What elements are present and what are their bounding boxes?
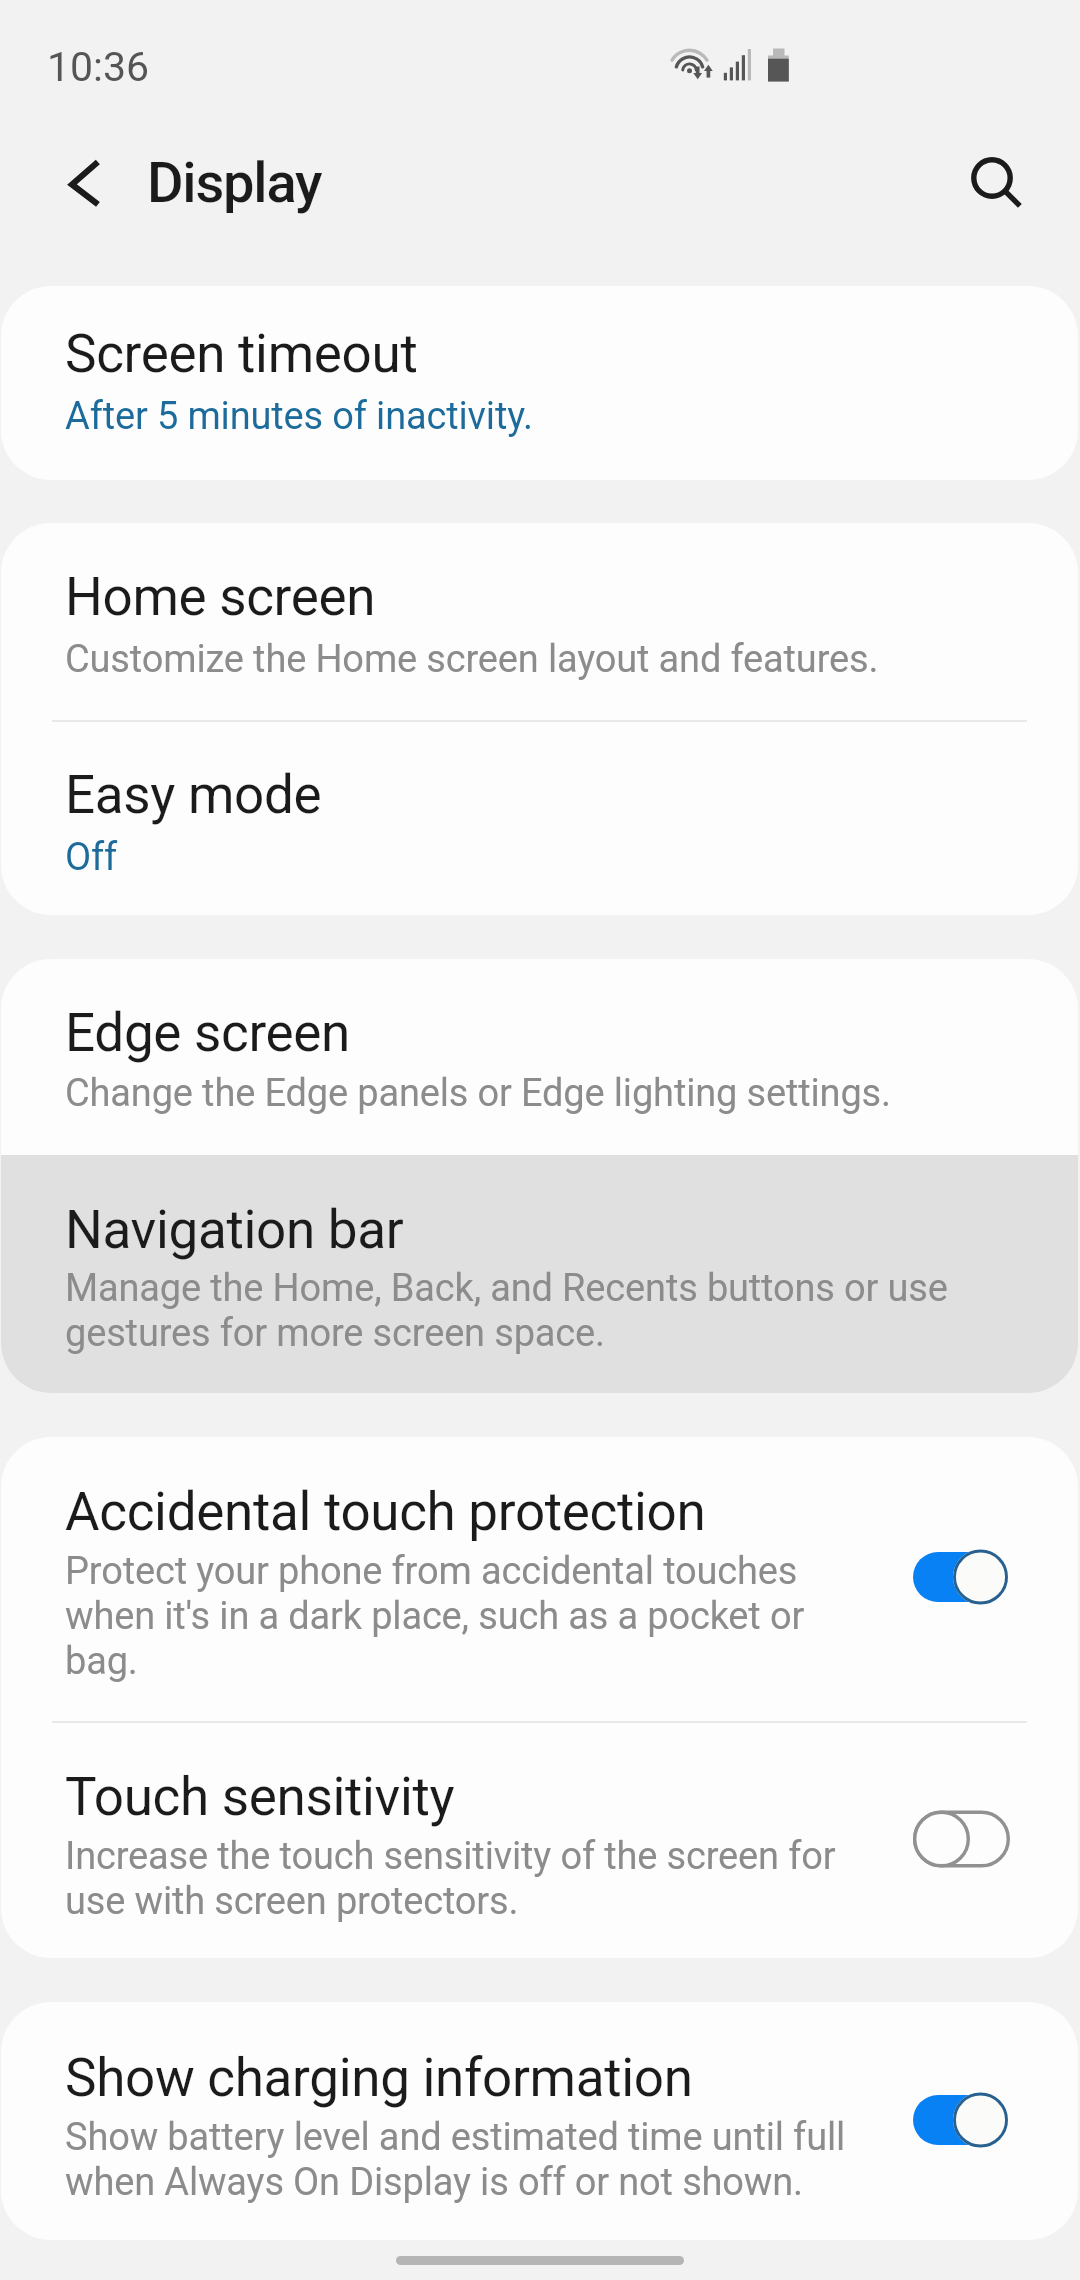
staticText: Screen timeout [65, 323, 418, 385]
button[interactable]: Navigate up [26, 119, 118, 211]
staticText: Show charging information [65, 2047, 693, 2109]
staticText: Touch sensitivity [65, 1766, 455, 1828]
staticText: Show battery level and estimated time un… [65, 2114, 871, 2204]
staticText: Accidental touch protection [65, 1481, 706, 1543]
staticText: Manage the Home, Back, and Recents butto… [65, 1265, 997, 1355]
button[interactable]: Easy mode [1, 722, 1078, 915]
staticText: Navigation bar [65, 1199, 404, 1261]
button[interactable]: Home screen [1, 523, 1078, 720]
staticText: 10:36 [47, 43, 150, 91]
button[interactable]: Enabled [913, 1546, 1013, 1608]
button[interactable]: Search [946, 132, 1038, 224]
button[interactable]: Touch sensitivity [1, 1723, 1078, 1958]
staticText: Customize the Home screen layout and fea… [65, 636, 879, 681]
button[interactable]: Show charging information [1, 2002, 1078, 2240]
staticText: Off [65, 834, 118, 879]
button[interactable]: Accidental touch protection [1, 1437, 1078, 1721]
button[interactable]: Edge screen [1, 959, 1078, 1155]
button[interactable]: Disabled [913, 1808, 1013, 1870]
staticText: Protect your phone from accidental touch… [65, 1548, 871, 1683]
staticText: Increase the touch sensitivity of the sc… [65, 1833, 871, 1923]
staticText: After 5 minutes of inactivity. [65, 393, 533, 438]
button[interactable]: Enabled [913, 2089, 1013, 2151]
button[interactable]: Screen timeout [1, 286, 1078, 480]
button[interactable]: Navigation bar [1, 1155, 1078, 1393]
staticText: Display [147, 150, 322, 216]
staticText: Home screen [65, 566, 376, 628]
staticText: Easy mode [65, 764, 322, 826]
staticText: Edge screen [65, 1002, 351, 1064]
staticText: Change the Edge panels or Edge lighting … [65, 1070, 891, 1115]
